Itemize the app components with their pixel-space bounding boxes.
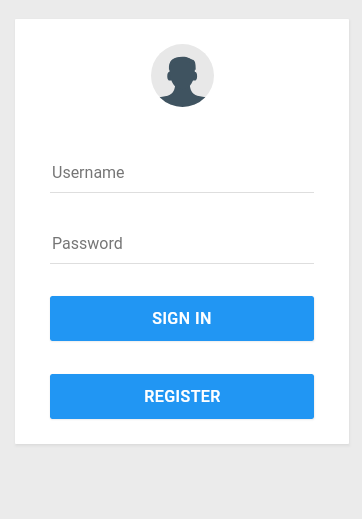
button[interactable]: Username (50, 158, 314, 193)
staticText: Username (52, 163, 125, 182)
staticText: SIGN IN (152, 309, 212, 328)
button[interactable]: REGISTER (50, 374, 314, 419)
button[interactable]: Profile picture (151, 44, 214, 107)
button[interactable]: Password (50, 229, 314, 264)
staticText: REGISTER (144, 387, 221, 406)
staticText: Password (52, 234, 123, 253)
button[interactable]: SIGN IN (50, 296, 314, 341)
